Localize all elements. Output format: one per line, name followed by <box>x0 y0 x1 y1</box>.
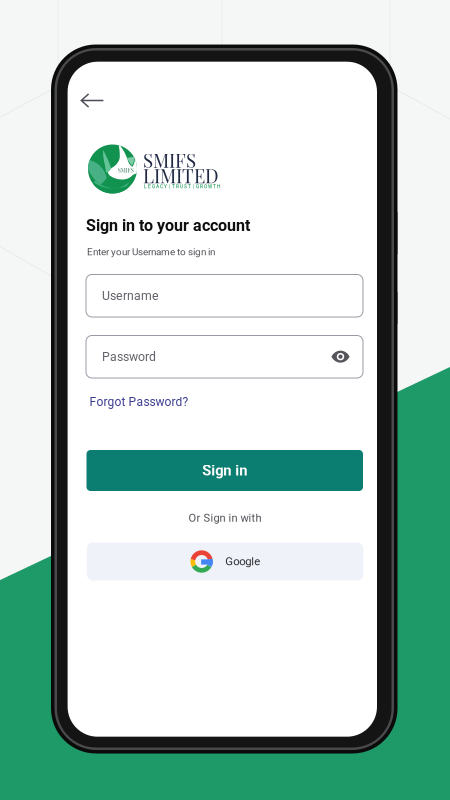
staticText: SMIFS <box>117 166 133 174</box>
staticText: Or Sign in with <box>188 511 261 524</box>
staticText: Enter your Username to sign in <box>87 246 215 258</box>
button[interactable]: Back <box>68 80 116 120</box>
staticText: SMIFS <box>143 148 196 172</box>
staticText: Google <box>225 555 260 568</box>
staticText: Username <box>102 289 159 303</box>
button[interactable]: Sign in <box>86 450 363 491</box>
button[interactable]: Google <box>87 542 363 580</box>
staticText: Forgot Password? <box>90 395 189 409</box>
staticText: LIMITED <box>143 163 218 188</box>
staticText: L E G A C Y | T R U S T | G R O W T H <box>144 184 220 189</box>
staticText: Sign in to your account <box>86 216 250 235</box>
staticText: Password <box>102 350 156 364</box>
staticText: Sign in <box>202 462 247 479</box>
button[interactable]: Forgot Password? <box>90 392 195 412</box>
